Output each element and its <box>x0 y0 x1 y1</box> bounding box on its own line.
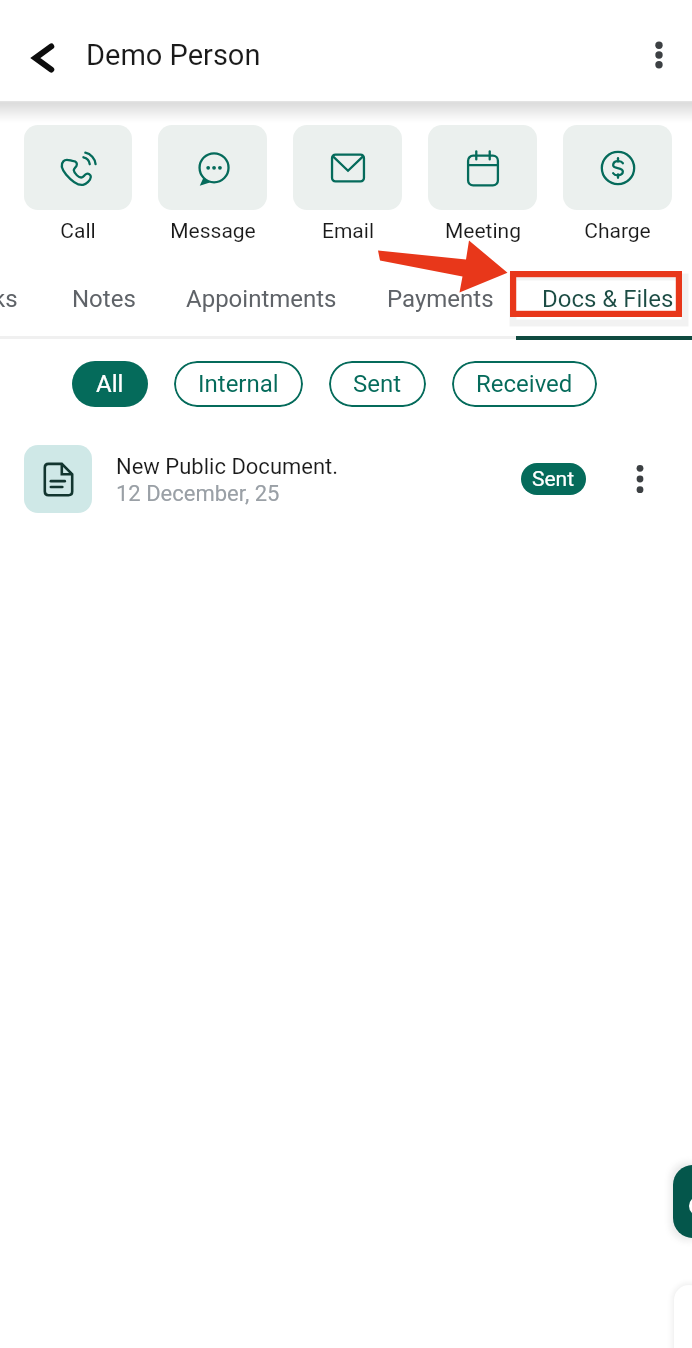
button[interactable]: All <box>72 361 148 407</box>
button[interactable]: Sent <box>329 361 426 407</box>
staticText: Received <box>476 370 573 398</box>
staticText: Notes <box>72 285 136 313</box>
button[interactable]: Appointments <box>161 263 362 335</box>
staticText: New Public Document. <box>116 454 339 480</box>
staticText: Message <box>170 219 256 244</box>
button[interactable]: Payments <box>362 263 519 335</box>
staticText: Demo Person <box>86 38 261 72</box>
button[interactable]: Back <box>14 29 72 87</box>
staticText: Charge <box>584 219 651 244</box>
staticText: Email <box>322 219 374 244</box>
button[interactable]: ks <box>0 263 43 335</box>
button[interactable]: Add <box>673 1165 692 1238</box>
button[interactable]: Charge <box>563 125 672 244</box>
button[interactable]: Docs & Files <box>517 263 692 335</box>
staticText: Internal <box>198 370 279 398</box>
staticText: Appointments <box>186 285 337 313</box>
button[interactable]: Received <box>452 361 597 407</box>
staticText: 12 December, 25 <box>116 481 280 507</box>
button[interactable]: More options <box>631 27 687 83</box>
staticText: All <box>96 370 124 398</box>
staticText: ks <box>0 285 18 313</box>
button[interactable]: Item options <box>612 451 668 507</box>
staticText: Meeting <box>445 219 521 244</box>
staticText: Call <box>60 219 96 244</box>
button[interactable]: New Public Document. <box>0 437 692 521</box>
staticText: Docs & Files <box>542 285 674 313</box>
button[interactable]: Email <box>293 125 402 244</box>
staticText: Sent <box>532 467 575 492</box>
button[interactable]: Notes <box>47 263 161 335</box>
button[interactable]: Internal <box>174 361 303 407</box>
button[interactable]: Message <box>158 125 267 244</box>
button[interactable]: Meeting <box>428 125 537 244</box>
button[interactable]: Call <box>24 125 132 244</box>
staticText: Payments <box>387 285 494 313</box>
staticText: Sent <box>353 370 402 398</box>
